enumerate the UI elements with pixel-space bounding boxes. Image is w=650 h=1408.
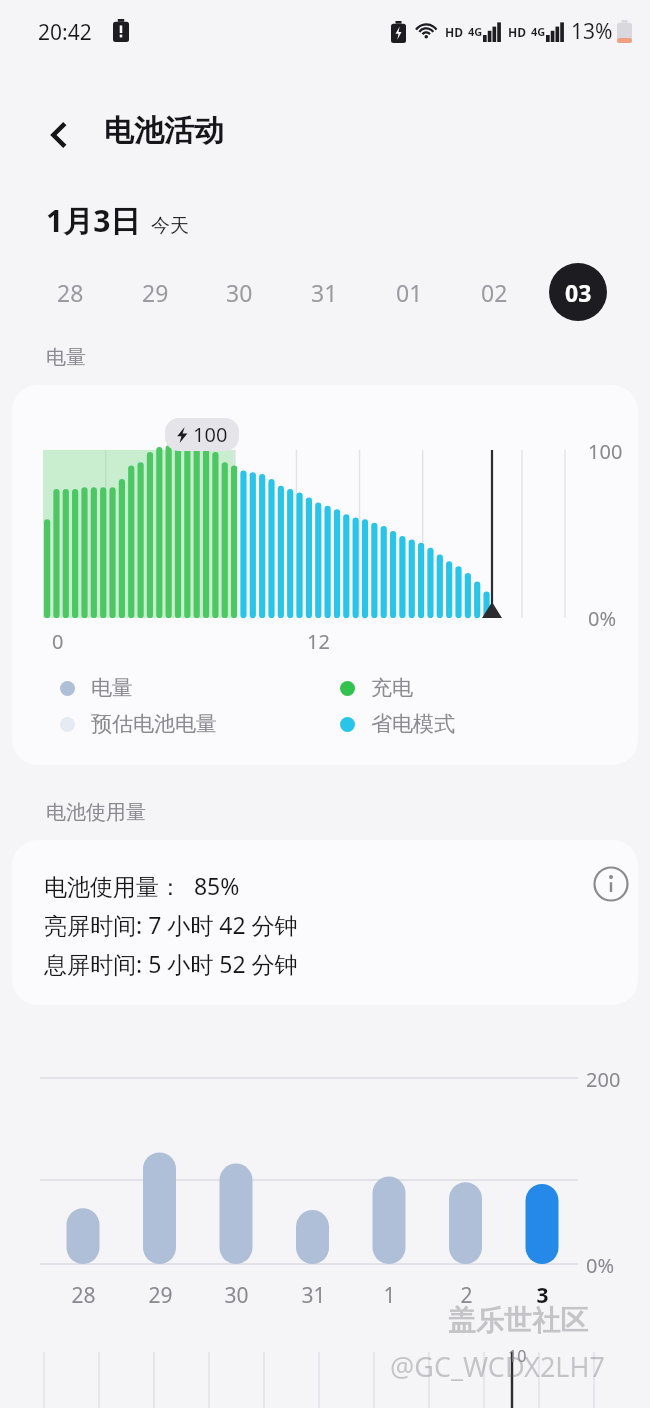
staticText: 电池使用量 — [46, 800, 146, 825]
staticText: 13% — [571, 17, 613, 46]
button[interactable]: 31 — [295, 263, 353, 321]
button[interactable]: 29 — [132, 1278, 188, 1312]
button[interactable]: 01 — [380, 263, 438, 321]
staticText: 12 — [307, 628, 330, 655]
staticText: 0 — [52, 628, 64, 655]
staticText: HD — [445, 24, 463, 40]
staticText: 29 — [148, 1281, 173, 1310]
staticText: 10 — [508, 1345, 527, 1367]
button[interactable]: Back — [30, 105, 90, 165]
staticText: 电池使用量： 85% — [44, 870, 240, 901]
staticText: 3 — [536, 1281, 549, 1310]
staticText: 电量 — [46, 345, 86, 370]
staticText: 省电模式 — [371, 711, 455, 737]
staticText: 4G — [468, 24, 483, 39]
button[interactable]: 2 — [438, 1278, 494, 1312]
staticText: 1月3日 — [46, 200, 141, 241]
staticText: @GC_WCDX2LH7 — [390, 1348, 605, 1385]
staticText: 盖乐世社区 — [448, 1303, 588, 1338]
button[interactable]: Info — [581, 854, 638, 914]
staticText: 02 — [481, 277, 508, 308]
staticText: 100 — [588, 438, 623, 465]
staticText: 31 — [311, 277, 338, 308]
staticText: 28 — [71, 1281, 96, 1310]
button[interactable]: 29 — [126, 263, 184, 321]
staticText: 30 — [226, 277, 253, 308]
staticText: 电量 — [91, 675, 133, 701]
staticText: 100 — [193, 421, 228, 448]
staticText: 预估电池电量 — [91, 711, 217, 737]
button[interactable]: 31 — [285, 1278, 341, 1312]
staticText: 31 — [301, 1281, 326, 1310]
button[interactable]: 电池使用量： 85% — [12, 840, 638, 1005]
staticText: 1 — [383, 1281, 396, 1310]
button[interactable]: 28 — [41, 263, 99, 321]
staticText: 03 — [565, 277, 592, 308]
button[interactable]: 03 — [549, 263, 607, 321]
staticText: 29 — [142, 277, 169, 308]
staticText: HD — [508, 24, 526, 40]
button[interactable]: 30 — [208, 1278, 264, 1312]
staticText: 4G — [531, 24, 546, 39]
staticText: 20:42 — [38, 18, 92, 47]
staticText: 亮屏时间: 7 小时 42 分钟 — [44, 909, 298, 940]
button[interactable]: 30 — [210, 263, 268, 321]
button[interactable]: 3 — [514, 1278, 570, 1312]
staticText: 息屏时间: 5 小时 52 分钟 — [44, 948, 298, 979]
staticText: 0% — [586, 1252, 615, 1279]
button[interactable]: 1 — [361, 1278, 417, 1312]
button[interactable]: 02 — [465, 263, 523, 321]
button[interactable]: 100 — [12, 385, 638, 765]
staticText: 30 — [224, 1281, 249, 1310]
staticText: 充电 — [371, 675, 413, 701]
staticText: 今天 — [151, 214, 189, 238]
staticText: 0% — [588, 605, 617, 632]
staticText: 28 — [57, 277, 84, 308]
staticText: 2 — [460, 1281, 473, 1310]
staticText: 200 — [586, 1066, 621, 1093]
staticText: 01 — [396, 277, 423, 308]
button[interactable]: 28 — [55, 1278, 111, 1312]
staticText: 电池活动 — [104, 112, 224, 150]
